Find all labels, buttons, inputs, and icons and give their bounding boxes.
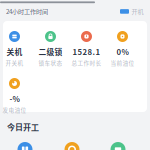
staticText: 当前油位 <box>110 59 134 67</box>
staticText: -% <box>9 93 19 104</box>
button[interactable]: 开工 <box>17 142 32 150</box>
staticText: 二级锁 <box>38 46 62 57</box>
staticText: 关机 <box>6 46 22 57</box>
staticText: 1528.1 <box>72 46 100 57</box>
staticText: 开关机 <box>5 59 23 67</box>
button[interactable]: 0% <box>104 31 140 67</box>
button[interactable]: 加油 <box>64 142 79 150</box>
staticText: 24小时工作时间 <box>6 7 48 16</box>
button[interactable]: 收工 <box>110 142 125 150</box>
staticText: 锁车状态 <box>38 59 62 67</box>
staticText: 发电油位 <box>2 106 26 114</box>
staticText: 开机 <box>131 7 143 16</box>
button[interactable]: 关机 <box>0 31 32 67</box>
button[interactable]: 二级锁 <box>32 31 68 67</box>
button[interactable]: 开机 <box>120 7 143 16</box>
button[interactable]: -% <box>0 78 32 114</box>
button[interactable]: 1528.1 <box>68 31 104 67</box>
staticText: 0% <box>116 46 128 57</box>
staticText: 今日开工 <box>7 121 39 133</box>
staticText: 总工作时长 <box>71 59 101 67</box>
